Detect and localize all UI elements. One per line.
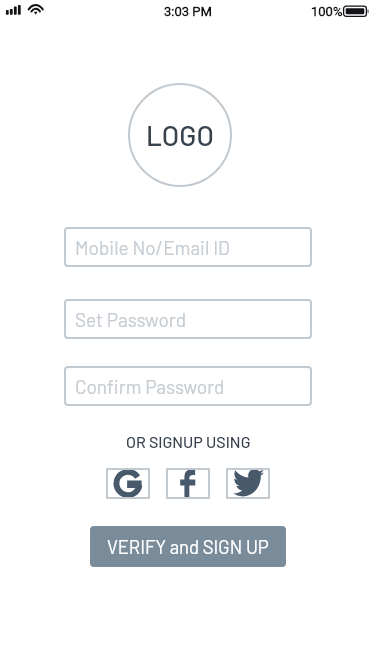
staticText: VERIFY and SIGN UP [107, 535, 269, 557]
button[interactable]: Sign up with Facebook [166, 468, 210, 499]
button[interactable]: Sign up with Google [106, 468, 150, 499]
staticText: Set Password [75, 308, 187, 331]
button[interactable]: VERIFY and SIGN UP [90, 526, 286, 567]
staticText: LOGO [146, 118, 214, 152]
staticText: 3:03 PM [164, 4, 212, 19]
button[interactable]: Mobile No/Email ID [64, 227, 312, 267]
staticText: OR SIGNUP USING [126, 432, 251, 451]
staticText: Mobile No/Email ID [75, 236, 230, 259]
button[interactable]: Set Password [64, 299, 312, 339]
staticText: Confirm Password [75, 375, 225, 398]
button[interactable]: Sign up with Twitter [226, 468, 270, 499]
button[interactable]: Confirm Password [64, 366, 312, 406]
staticText: 100% [311, 4, 343, 19]
